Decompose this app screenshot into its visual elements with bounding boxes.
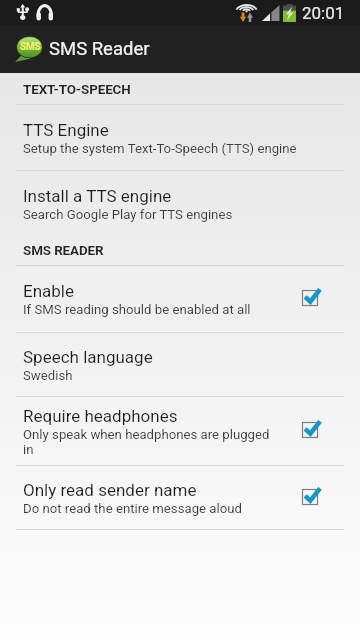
- staticText: Require headphones: [23, 406, 178, 426]
- staticText: Swedish: [23, 368, 73, 383]
- staticText: Only read sender name: [23, 480, 197, 500]
- staticText: TTS Engine: [23, 120, 109, 140]
- staticText: Setup the system Text-To-Speech (TTS) en…: [23, 141, 297, 156]
- button[interactable]: Toggle Only read sender name: [302, 481, 334, 515]
- button[interactable]: Install a TTS engine: [0, 171, 360, 237]
- button[interactable]: TTS Engine: [0, 105, 360, 171]
- staticText: TEXT-TO-SPEECH: [23, 82, 131, 98]
- staticText: Search Google Play for TTS engines: [23, 207, 233, 222]
- button[interactable]: Toggle Require headphones: [302, 414, 334, 448]
- staticText: Do not read the entire message aloud: [23, 501, 242, 516]
- button[interactable]: Only read sender name: [0, 466, 360, 530]
- button[interactable]: Enable: [0, 266, 360, 333]
- staticText: Install a TTS engine: [23, 186, 172, 206]
- staticText: SMS Reader: [49, 38, 150, 60]
- button[interactable]: Require headphones: [0, 397, 360, 466]
- staticText: SMS READER: [23, 243, 104, 259]
- staticText: Only speak when headphones are plugged i…: [23, 427, 273, 457]
- staticText: Speech language: [23, 347, 153, 367]
- button[interactable]: Speech language: [0, 333, 360, 397]
- button[interactable]: SMS: [0, 26, 360, 73]
- button[interactable]: Toggle Enable: [302, 282, 334, 316]
- staticText: Enable: [23, 281, 74, 301]
- staticText: If SMS reading should be enabled at all: [23, 302, 251, 317]
- staticText: 20:01: [302, 3, 345, 23]
- staticText: SMS: [20, 41, 41, 53]
